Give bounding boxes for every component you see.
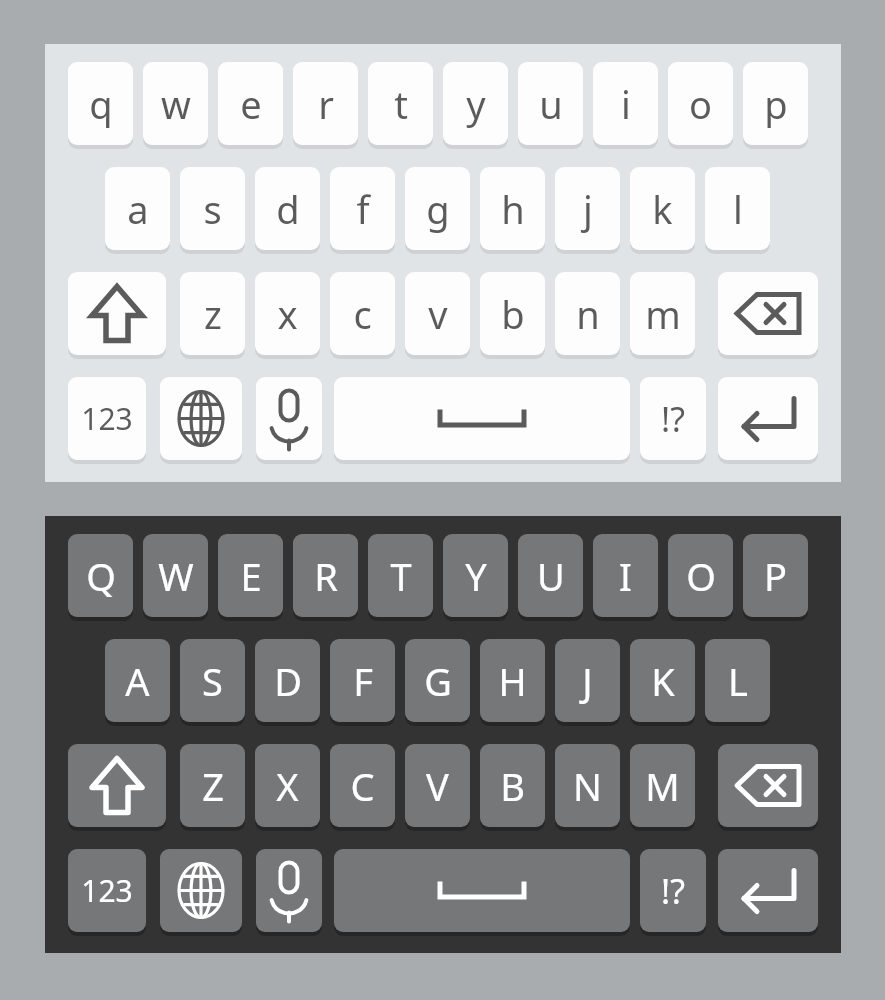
button[interactable]: Space: [334, 377, 630, 460]
staticText: J: [582, 655, 593, 707]
button[interactable]: G: [405, 639, 470, 722]
button[interactable]: w: [143, 62, 208, 145]
staticText: C: [350, 760, 375, 812]
staticText: H: [498, 655, 527, 707]
button[interactable]: S: [180, 639, 245, 722]
button[interactable]: Q: [68, 534, 133, 617]
staticText: Z: [202, 760, 224, 812]
staticText: i: [621, 78, 631, 130]
staticText: d: [276, 183, 300, 235]
staticText: j: [583, 183, 593, 235]
staticText: D: [274, 655, 302, 707]
button[interactable]: P: [743, 534, 808, 617]
button[interactable]: q: [68, 62, 133, 145]
button[interactable]: r: [293, 62, 358, 145]
button[interactable]: Voice input: [256, 849, 322, 932]
button[interactable]: D: [255, 639, 320, 722]
button[interactable]: Z: [180, 744, 245, 827]
staticText: t: [394, 78, 408, 130]
button[interactable]: Voice input: [256, 377, 322, 460]
button[interactable]: k: [630, 167, 695, 250]
button[interactable]: p: [743, 62, 808, 145]
button[interactable]: C: [330, 744, 395, 827]
button[interactable]: j: [555, 167, 620, 250]
button[interactable]: I: [593, 534, 658, 617]
button[interactable]: Y: [443, 534, 508, 617]
button[interactable]: K: [630, 639, 695, 722]
staticText: R: [314, 550, 338, 602]
button[interactable]: X: [255, 744, 320, 827]
staticText: a: [127, 183, 149, 235]
button[interactable]: f: [330, 167, 395, 250]
staticText: o: [689, 78, 712, 130]
staticText: A: [125, 655, 150, 707]
staticText: P: [764, 550, 787, 602]
button[interactable]: L: [705, 639, 770, 722]
button[interactable]: d: [255, 167, 320, 250]
button[interactable]: h: [480, 167, 545, 250]
button[interactable]: Backspace: [718, 272, 818, 355]
button[interactable]: J: [555, 639, 620, 722]
button[interactable]: Space: [334, 849, 630, 932]
button[interactable]: y: [443, 62, 508, 145]
staticText: X: [276, 760, 299, 812]
button[interactable]: v: [405, 272, 470, 355]
staticText: p: [764, 78, 788, 130]
button[interactable]: Shift: [68, 744, 166, 827]
button[interactable]: Change language: [160, 377, 242, 460]
button[interactable]: A: [105, 639, 170, 722]
button[interactable]: o: [668, 62, 733, 145]
button[interactable]: g: [405, 167, 470, 250]
button[interactable]: m: [630, 272, 695, 355]
button[interactable]: n: [555, 272, 620, 355]
button[interactable]: !?: [640, 377, 706, 460]
button[interactable]: Shift: [68, 272, 166, 355]
staticText: h: [501, 183, 525, 235]
staticText: c: [353, 288, 372, 340]
button[interactable]: Backspace: [718, 744, 818, 827]
staticText: y: [466, 78, 486, 130]
button[interactable]: 123: [68, 849, 146, 932]
button[interactable]: e: [218, 62, 283, 145]
button[interactable]: B: [480, 744, 545, 827]
staticText: K: [651, 655, 675, 707]
button[interactable]: i: [593, 62, 658, 145]
button[interactable]: b: [480, 272, 545, 355]
staticText: b: [501, 288, 525, 340]
button[interactable]: a: [105, 167, 170, 250]
staticText: T: [390, 550, 412, 602]
button[interactable]: Enter: [718, 849, 818, 932]
button[interactable]: U: [518, 534, 583, 617]
button[interactable]: z: [180, 272, 245, 355]
button[interactable]: 123: [68, 377, 146, 460]
button[interactable]: !?: [640, 849, 706, 932]
button[interactable]: O: [668, 534, 733, 617]
staticText: V: [426, 760, 449, 812]
button[interactable]: M: [630, 744, 695, 827]
staticText: W: [158, 550, 194, 602]
staticText: r: [318, 78, 334, 130]
button[interactable]: N: [555, 744, 620, 827]
staticText: M: [645, 760, 680, 812]
staticText: e: [240, 78, 262, 130]
button[interactable]: E: [218, 534, 283, 617]
staticText: k: [652, 183, 673, 235]
button[interactable]: R: [293, 534, 358, 617]
button[interactable]: x: [255, 272, 320, 355]
staticText: L: [728, 655, 748, 707]
button[interactable]: H: [480, 639, 545, 722]
button[interactable]: t: [368, 62, 433, 145]
button[interactable]: V: [405, 744, 470, 827]
button[interactable]: s: [180, 167, 245, 250]
button[interactable]: T: [368, 534, 433, 617]
staticText: B: [500, 760, 525, 812]
button[interactable]: l: [705, 167, 770, 250]
button[interactable]: F: [330, 639, 395, 722]
button[interactable]: u: [518, 62, 583, 145]
button[interactable]: Enter: [718, 377, 818, 460]
staticText: f: [356, 183, 370, 235]
staticText: s: [203, 183, 222, 235]
button[interactable]: Change language: [160, 849, 242, 932]
button[interactable]: W: [143, 534, 208, 617]
button[interactable]: c: [330, 272, 395, 355]
